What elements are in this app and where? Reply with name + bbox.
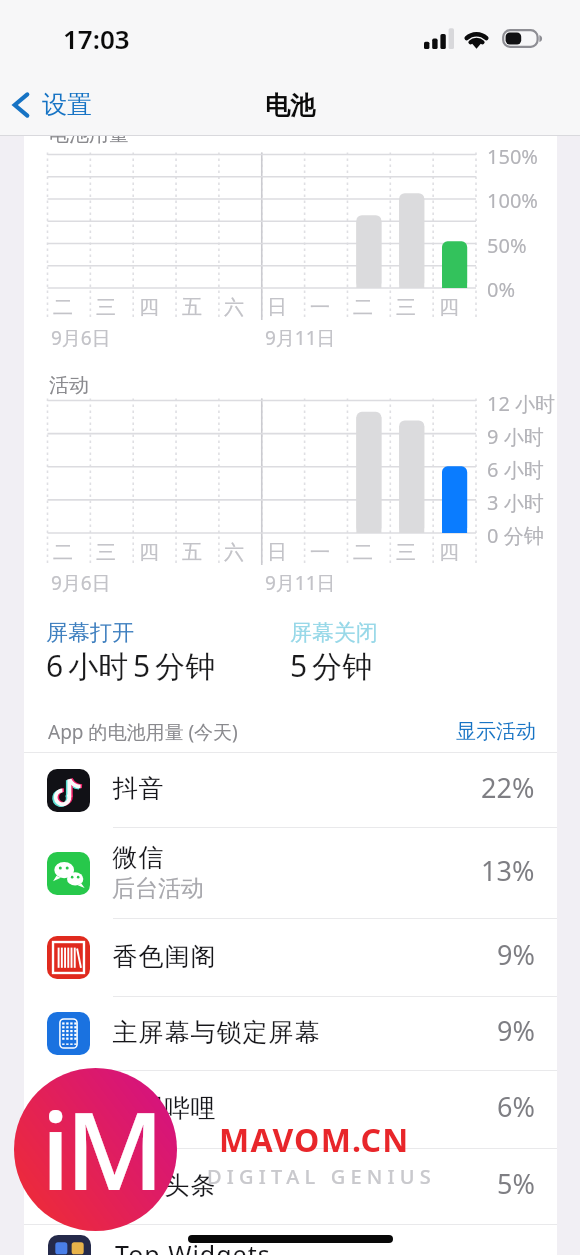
staticText: iM [41, 1075, 160, 1222]
staticText: 屏幕关闭 [290, 619, 378, 647]
staticText: 3 小时 [487, 489, 544, 516]
staticText: 三 [96, 540, 116, 565]
staticText: 二 [53, 295, 73, 320]
staticText: 微信 [112, 842, 164, 873]
staticText: 六 [224, 295, 244, 320]
staticText: 六 [224, 540, 244, 565]
staticText: Top Widgets [115, 1237, 271, 1255]
staticText: 二 [53, 540, 73, 565]
staticText: 0 分钟 [487, 522, 544, 549]
staticText: 三 [96, 295, 116, 320]
staticText: 12 小时 [487, 390, 556, 417]
staticText: 9月6日 [51, 325, 111, 351]
staticText: 50% [487, 232, 527, 259]
staticText: 一 [310, 540, 330, 565]
staticText: 9月6日 [51, 570, 111, 596]
staticText: 三 [396, 540, 416, 565]
staticText: 四 [439, 540, 459, 565]
staticText: 5 分钟 [290, 645, 373, 686]
staticText: 电池 [265, 90, 315, 121]
staticText: 五 [182, 540, 202, 565]
button[interactable]: 主屏幕与锁定屏幕 [24, 997, 557, 1070]
button[interactable]: 显示活动 [452, 715, 540, 748]
staticText: 设置 [42, 89, 92, 120]
staticText: 抖音 [112, 773, 164, 804]
staticText: 150% [487, 143, 538, 170]
staticText: 9% [497, 1012, 535, 1049]
button[interactable]: 设置 [0, 83, 102, 126]
button[interactable]: 微信 [24, 828, 557, 918]
staticText: 9月11日 [265, 570, 336, 596]
staticText: 二 [353, 295, 373, 320]
button[interactable]: Top Widgets [24, 1225, 557, 1255]
staticText: 二 [353, 540, 373, 565]
button[interactable]: 哔哩哔哩 [24, 1071, 557, 1148]
staticText: 5% [497, 1165, 535, 1202]
staticText: 活动 [49, 373, 89, 398]
staticText: 6 小时 [487, 456, 544, 483]
staticText: 9月11日 [265, 325, 336, 351]
staticText: 电池用量 [49, 122, 129, 147]
staticText: 22% [481, 769, 535, 806]
staticText: 13% [481, 852, 535, 889]
staticText: 6% [497, 1088, 535, 1125]
staticText: 主屏幕与锁定屏幕 [112, 1017, 320, 1048]
staticText: 6 小时 5 分钟 [46, 645, 216, 686]
staticText: 后台活动 [112, 874, 204, 903]
staticText: 屏幕打开 [46, 619, 134, 647]
staticText: 今日头条 [112, 1170, 216, 1201]
staticText: 四 [139, 295, 159, 320]
staticText: 日 [267, 540, 287, 565]
staticText: 哔哩哔哩 [112, 1093, 216, 1124]
staticText: 四 [139, 540, 159, 565]
staticText: 日 [267, 295, 287, 320]
staticText: 三 [396, 295, 416, 320]
staticText: MAVOM.CN [219, 1118, 410, 1162]
staticText: 显示活动 [456, 719, 536, 744]
staticText: 9% [497, 936, 535, 973]
staticText: 五 [182, 295, 202, 320]
button[interactable]: 抖音 [24, 753, 557, 827]
staticText: 四 [439, 295, 459, 320]
staticText: 17:03 [63, 21, 130, 56]
staticText: 0% [487, 276, 516, 303]
staticText: 9 小时 [487, 423, 544, 450]
staticText: 一 [310, 295, 330, 320]
staticText: App 的电池用量 (今天) [48, 719, 238, 745]
staticText: 香色闺阁 [112, 941, 216, 972]
staticText: 100% [487, 187, 538, 214]
button[interactable]: 香色闺阁 [24, 919, 557, 996]
staticText: DIGITAL GENIUS [207, 1163, 436, 1190]
button[interactable]: 今日头条 [24, 1149, 557, 1224]
